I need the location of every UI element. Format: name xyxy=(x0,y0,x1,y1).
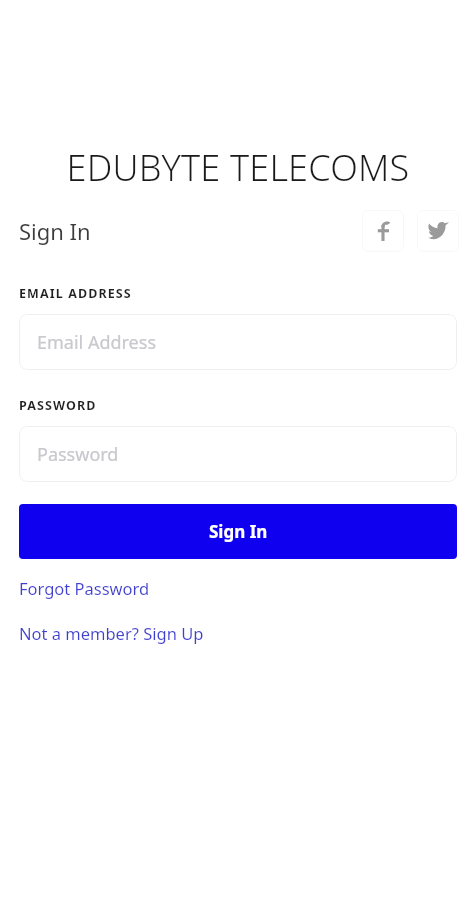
button[interactable]: Sign in with Facebook xyxy=(362,210,404,252)
staticText: Email Address xyxy=(37,330,157,355)
button[interactable]: Email Address xyxy=(19,314,457,370)
staticText: EMAIL ADDRESS xyxy=(19,285,132,302)
button[interactable]: Sign in with Twitter xyxy=(417,210,459,252)
staticText: Forgot Password xyxy=(19,577,150,599)
staticText: Sign In xyxy=(209,520,268,543)
button[interactable]: Forgot Password xyxy=(0,575,476,601)
button[interactable]: Sign In xyxy=(19,504,457,559)
button[interactable]: Not a member? Sign Up xyxy=(0,620,476,646)
staticText: EDUBYTE TELECOMS xyxy=(0,143,476,192)
staticText: Not a member? Sign Up xyxy=(19,622,204,644)
staticText: PASSWORD xyxy=(19,397,97,414)
staticText: Sign In xyxy=(19,216,91,246)
staticText: Password xyxy=(37,442,119,467)
button[interactable]: Password xyxy=(19,426,457,482)
